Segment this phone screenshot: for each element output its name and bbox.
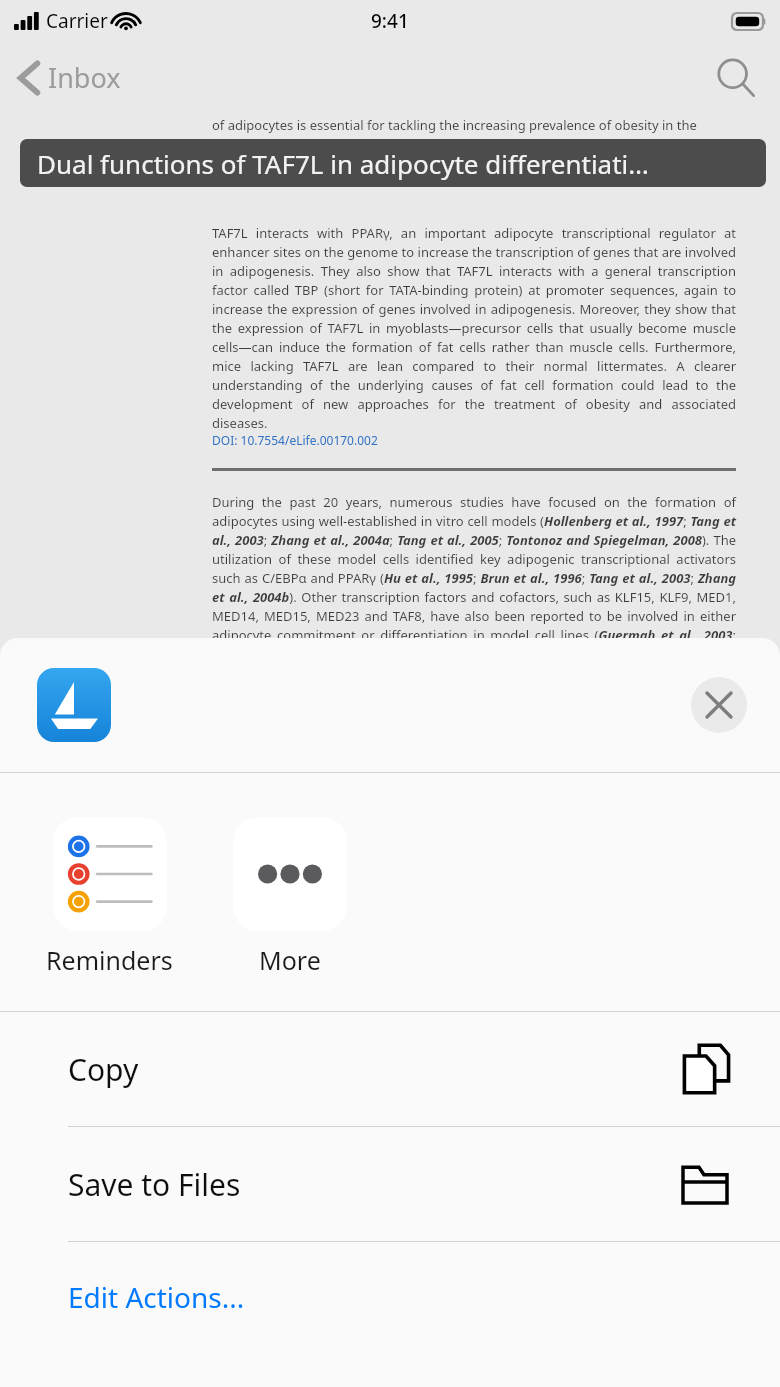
staticText: Reminders [46,943,173,977]
staticText: Edit Actions... [68,1278,245,1316]
button[interactable]: Close [691,677,747,733]
staticText: of adipocytes is essential for tackling … [212,116,736,172]
staticText: During the past 20 years, numerous studi… [212,493,736,929]
button[interactable]: Shared item [37,668,111,742]
staticText: Copy [68,1049,139,1090]
staticText: Inbox [48,59,121,96]
staticText: Carrier [46,8,108,34]
button[interactable]: More [233,817,347,977]
button[interactable]: Search [708,50,764,106]
button[interactable]: Reminders [46,817,173,977]
staticText: Dual functions of TAF7L in adipocyte dif… [37,146,649,181]
staticText: DOI: 10.7554/eLife.00170.002 [212,432,378,448]
staticText: TAF7L interacts with PPARγ, an important… [212,224,736,432]
staticText: Save to Files [68,1164,241,1205]
staticText: 9:41 [371,8,409,34]
button[interactable]: Dual functions of TAF7L in adipocyte dif… [20,139,766,187]
button[interactable]: Copy [0,1012,780,1126]
button[interactable]: Save to Files [0,1127,780,1241]
button[interactable]: Inbox [10,53,129,102]
staticText: More [259,943,321,977]
button[interactable]: Edit Actions... [0,1242,780,1352]
